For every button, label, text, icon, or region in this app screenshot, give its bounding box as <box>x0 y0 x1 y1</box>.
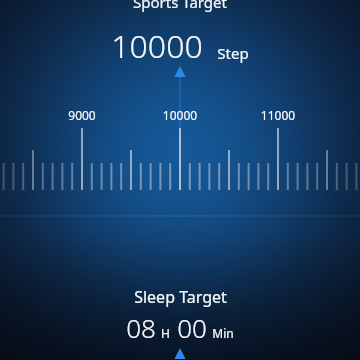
staticText: Sleep Target <box>134 286 227 308</box>
button[interactable] <box>0 125 360 360</box>
button[interactable]: 10000 <box>111 24 249 68</box>
staticText: Min <box>212 325 234 341</box>
staticText: 11000 <box>253 107 303 123</box>
staticText: Sports Target <box>133 0 227 12</box>
staticText: 10000 <box>111 24 203 68</box>
staticText: 00 <box>177 310 207 345</box>
button[interactable]: 08 <box>126 310 234 345</box>
staticText: 9000 <box>62 107 102 123</box>
staticText: 08 <box>126 310 156 345</box>
staticText: H <box>161 325 170 341</box>
other: Sports target selector <box>172 66 188 128</box>
staticText: Step <box>217 43 249 63</box>
staticText: 10000 <box>155 107 205 123</box>
other: Sleep target selector <box>172 348 188 360</box>
